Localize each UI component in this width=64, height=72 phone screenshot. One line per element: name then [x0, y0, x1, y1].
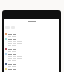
- button[interactable]: [4, 47, 59, 52]
- button[interactable]: [4, 62, 59, 67]
- button[interactable]: [4, 37, 59, 47]
- button[interactable]: [4, 32, 59, 37]
- button[interactable]: [5, 26, 15, 29]
- button[interactable]: [4, 67, 59, 72]
- button[interactable]: [4, 52, 59, 62]
